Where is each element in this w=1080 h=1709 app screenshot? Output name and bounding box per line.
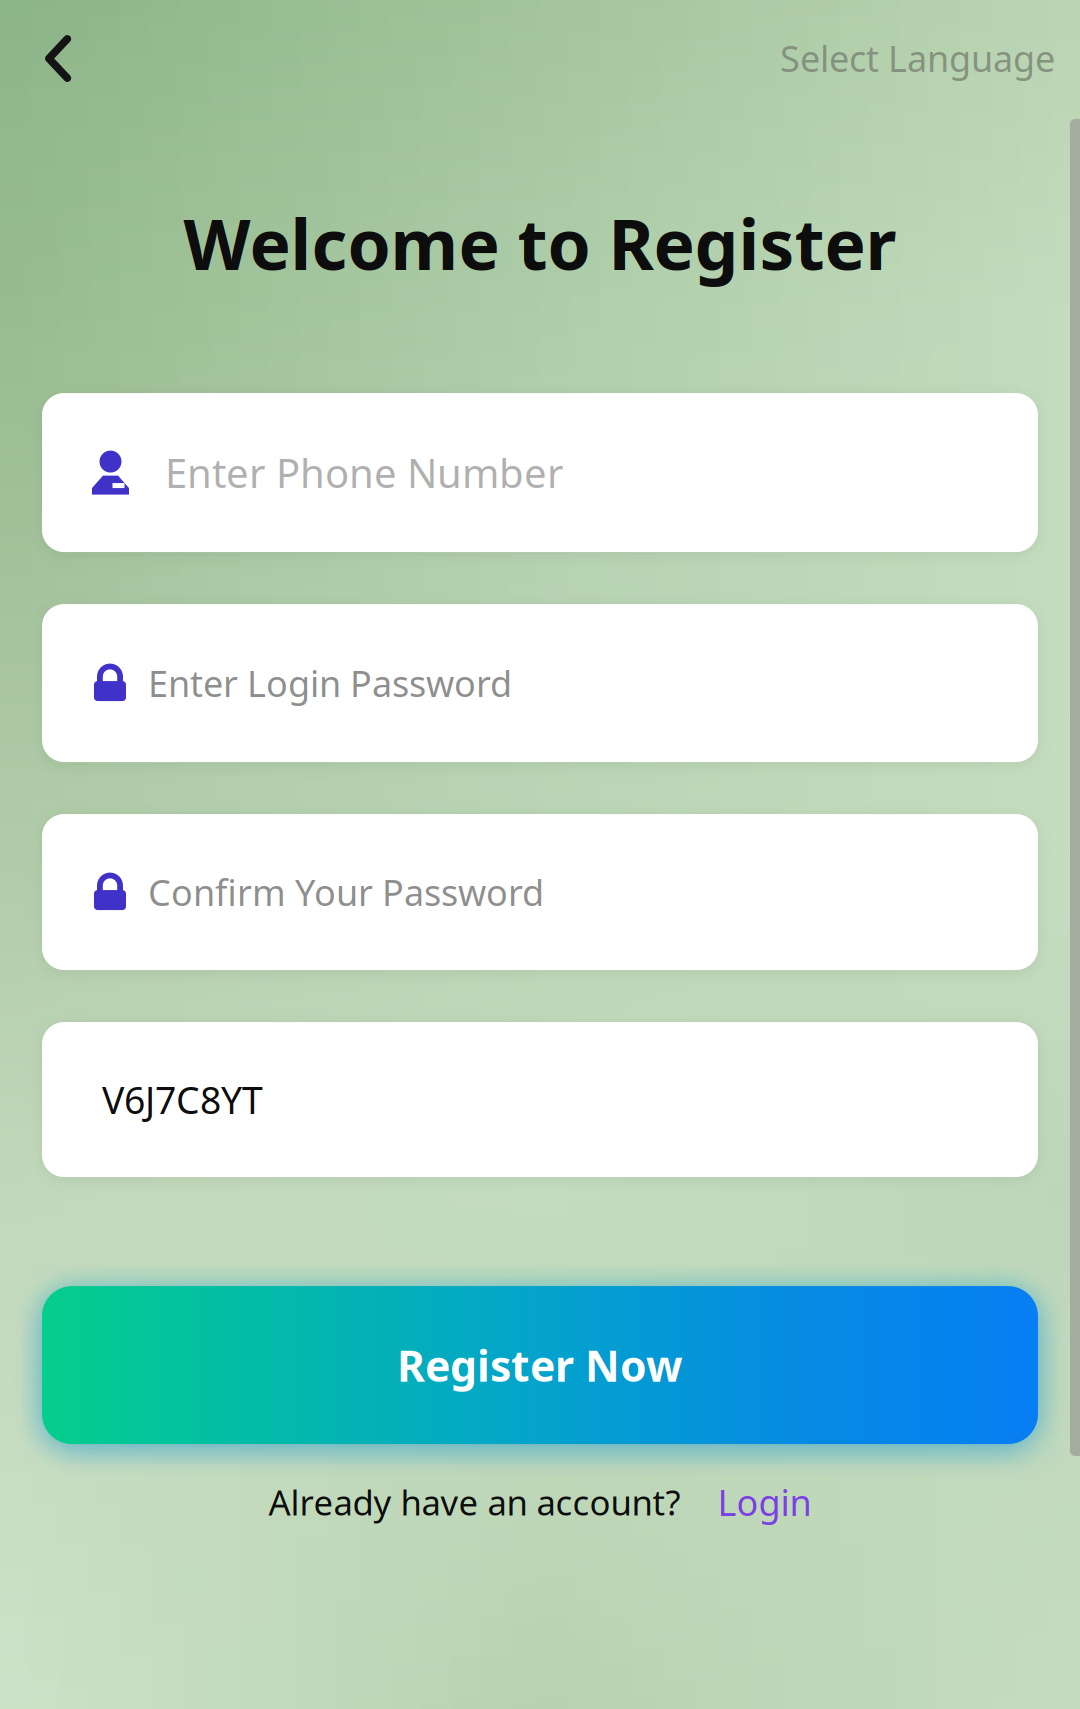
- staticText: Enter Phone Number: [165, 446, 564, 499]
- button[interactable]: Login: [680, 1470, 811, 1534]
- staticText: Enter Login Password: [148, 659, 512, 707]
- staticText: V6J7C8YT: [102, 1075, 263, 1124]
- button[interactable]: Register Now: [0, 1286, 1080, 1444]
- staticText: Confirm Your Password: [148, 868, 544, 916]
- button[interactable]: Select Language: [780, 0, 1080, 100]
- staticText: Register Now: [397, 1337, 683, 1393]
- staticText: Welcome to Register: [183, 197, 896, 289]
- button[interactable]: Back: [0, 0, 97, 96]
- staticText: Login: [717, 1478, 811, 1526]
- staticText: Already have an account?: [268, 1479, 680, 1525]
- staticText: Select Language: [780, 34, 1055, 82]
